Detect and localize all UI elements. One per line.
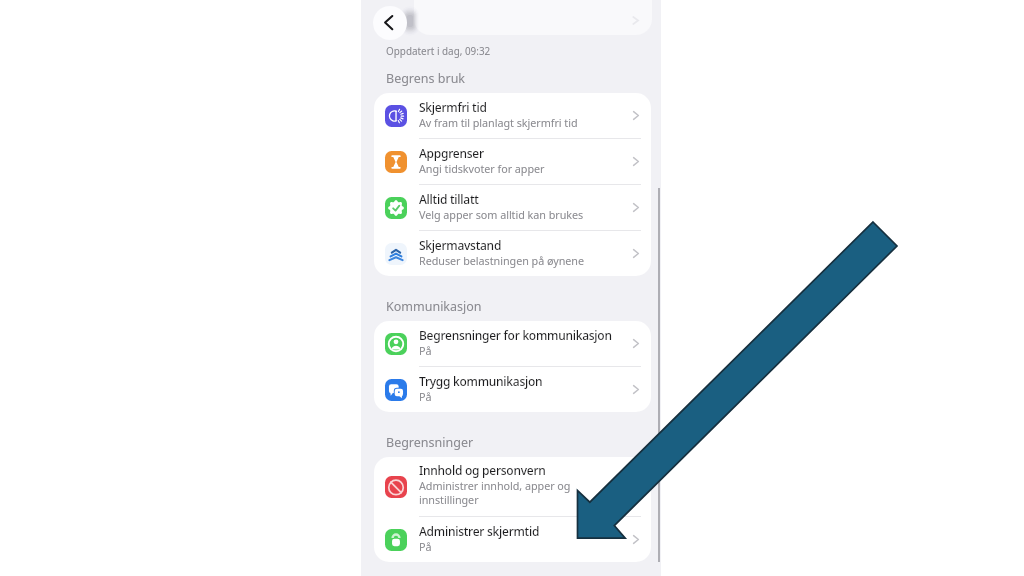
staticText: Administrer skjermtid [419,523,540,539]
button[interactable]: Skjermavstand [374,231,651,276]
button[interactable]: Back [373,6,407,40]
staticText: Skjermavstand [419,237,502,253]
button[interactable]: Appgrenser [374,139,651,185]
staticText: Reduser belastningen på øynene [419,253,584,268]
button[interactable]: Innhold og personvern [374,457,651,517]
staticText: Kommunikasjon [386,298,482,315]
staticText: Begrensninger [386,434,474,451]
staticText: På [419,539,432,554]
staticText: Velg apper som alltid kan brukes [419,207,584,222]
staticText: Innhold og personvern [419,462,546,478]
staticText: Skjermfri tid [419,99,487,115]
staticText: Administrer innhold, apper og innstillin… [419,478,571,508]
staticText: Av fram til planlagt skjermfri tid [419,115,578,130]
button[interactable]: Begrensninger for kommunikasjon [374,321,651,367]
staticText: Begrens bruk [386,70,466,87]
staticText: Begrensninger for kommunikasjon [419,327,612,343]
button[interactable]: Alltid tillatt [374,185,651,231]
staticText: Angi tidskvoter for apper [419,161,545,176]
button[interactable]: Administrer skjermtid [374,517,651,562]
button[interactable]: Trygg kommunikasjon [374,367,651,412]
staticText: Alltid tillatt [419,191,479,207]
staticText: Oppdatert i dag, 09:32 [386,44,491,57]
staticText: Appgrenser [419,145,484,161]
staticText: Trygg kommunikasjon [419,373,543,389]
staticText: På [419,343,432,358]
staticText: På [419,389,432,404]
button[interactable]: Skjermfri tid [374,93,651,139]
